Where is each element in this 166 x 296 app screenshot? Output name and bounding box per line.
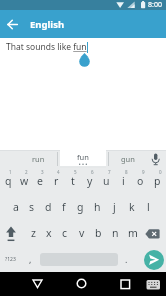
button[interactable]: t: [64, 168, 81, 194]
staticText: d: [45, 200, 52, 214]
staticText: z: [31, 226, 36, 240]
staticText: g: [77, 200, 84, 214]
staticText: n: [112, 226, 119, 240]
staticText: l: [147, 200, 150, 214]
button[interactable]: ,: [24, 246, 36, 272]
button[interactable]: j: [106, 194, 123, 220]
staticText: e: [37, 174, 43, 188]
staticText: 4: [57, 169, 60, 175]
staticText: b: [95, 226, 102, 240]
button[interactable]: y: [81, 168, 98, 194]
button[interactable]: [78, 52, 91, 68]
button[interactable]: x: [41, 220, 57, 246]
staticText: c: [62, 226, 68, 240]
staticText: That sounds like fun: [6, 41, 87, 53]
button[interactable]: w: [16, 168, 32, 194]
staticText: English: [30, 18, 65, 31]
staticText: p: [154, 174, 161, 188]
button[interactable]: run: [18, 150, 58, 167]
staticText: t: [71, 174, 75, 188]
button[interactable]: b: [90, 220, 107, 246]
button[interactable]: c: [57, 220, 73, 246]
button[interactable]: ?123: [0, 246, 21, 272]
staticText: 3: [41, 169, 44, 175]
button[interactable]: e: [32, 168, 48, 194]
button[interactable]: q: [0, 168, 16, 194]
button[interactable]: [76, 278, 87, 289]
button[interactable]: run: [0, 150, 166, 272]
button[interactable]: m: [124, 220, 141, 246]
staticText: o: [137, 174, 144, 188]
button[interactable]: r: [48, 168, 64, 194]
staticText: r: [54, 174, 59, 188]
staticText: 5: [74, 169, 77, 175]
button[interactable]: i: [115, 168, 132, 194]
button[interactable]: d: [40, 194, 56, 220]
staticText: i: [122, 174, 125, 188]
button[interactable]: o: [132, 168, 149, 194]
staticText: u: [103, 174, 110, 188]
staticText: s: [29, 200, 35, 214]
button[interactable]: l: [140, 194, 157, 220]
button[interactable]: fun: [60, 148, 106, 168]
button[interactable]: [32, 279, 43, 289]
staticText: 2: [25, 169, 28, 175]
staticText: 0: [159, 169, 162, 175]
staticText: j: [113, 200, 116, 214]
staticText: f: [62, 200, 66, 214]
staticText: a: [13, 200, 19, 214]
staticText: 6: [91, 169, 94, 175]
button[interactable]: [5, 17, 20, 32]
staticText: ,: [29, 253, 32, 265]
button[interactable]: [151, 153, 161, 166]
staticText: 9: [142, 169, 145, 175]
button[interactable]: [146, 280, 161, 291]
staticText: ?123: [5, 256, 16, 263]
staticText: .: [125, 253, 128, 265]
button[interactable]: u: [98, 168, 115, 194]
staticText: y: [87, 174, 93, 188]
button[interactable]: .: [120, 246, 132, 272]
staticText: fun: [77, 152, 89, 162]
button[interactable]: v: [73, 220, 90, 246]
staticText: 7: [108, 169, 111, 175]
staticText: v: [79, 226, 85, 240]
button[interactable]: g: [72, 194, 89, 220]
button[interactable]: s: [24, 194, 40, 220]
staticText: 1: [9, 169, 12, 175]
button[interactable]: h: [89, 194, 106, 220]
staticText: run: [32, 154, 45, 164]
staticText: gun: [121, 154, 135, 164]
button[interactable]: n: [107, 220, 124, 246]
staticText: w: [20, 174, 29, 188]
button[interactable]: a: [8, 194, 24, 220]
button[interactable]: [0, 220, 25, 246]
button[interactable]: p: [149, 168, 166, 194]
staticText: 8: [125, 169, 128, 175]
button[interactable]: [144, 250, 164, 270]
staticText: 8:00: [148, 0, 162, 10]
button[interactable]: [120, 279, 131, 290]
button[interactable]: k: [123, 194, 140, 220]
staticText: q: [5, 174, 12, 188]
button[interactable]: gun: [108, 150, 148, 167]
button[interactable]: z: [25, 220, 41, 246]
button[interactable]: [141, 220, 166, 246]
staticText: x: [46, 226, 52, 240]
button[interactable]: f: [56, 194, 72, 220]
staticText: k: [129, 200, 135, 214]
staticText: h: [94, 200, 101, 214]
staticText: m: [128, 226, 138, 240]
